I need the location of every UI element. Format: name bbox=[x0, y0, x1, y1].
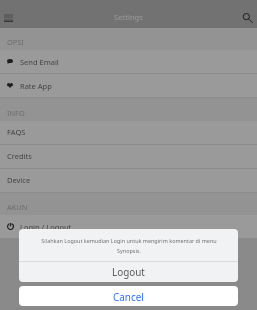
staticText: FAQS bbox=[7, 127, 26, 137]
staticText: Rate App bbox=[20, 81, 52, 91]
staticText: Silahkan Logout kemudian Login untuk men… bbox=[41, 237, 217, 254]
staticText: INFO bbox=[7, 108, 25, 118]
staticText: Logout bbox=[112, 265, 145, 278]
staticText: Settings bbox=[114, 12, 143, 22]
button[interactable]: Cancel bbox=[19, 286, 238, 306]
staticText: Device bbox=[7, 175, 31, 185]
staticText: OPSI bbox=[7, 37, 24, 47]
button[interactable]: Search bbox=[235, 0, 257, 28]
staticText: Login / Logout bbox=[20, 222, 72, 232]
staticText: Send Email bbox=[20, 57, 59, 67]
staticText: Cancel bbox=[113, 290, 144, 303]
staticText: AKUN bbox=[7, 202, 28, 212]
staticText: Credits bbox=[7, 151, 32, 161]
button[interactable]: Login / Logout bbox=[0, 215, 257, 239]
button[interactable]: Send Email bbox=[0, 50, 257, 74]
button[interactable]: Open navigation menu bbox=[0, 0, 22, 28]
button[interactable]: Credits bbox=[0, 145, 257, 169]
button[interactable]: Logout bbox=[19, 262, 238, 282]
button[interactable]: Rate App bbox=[0, 74, 257, 98]
button[interactable]: FAQS bbox=[0, 121, 257, 145]
button[interactable]: Device bbox=[0, 169, 257, 193]
